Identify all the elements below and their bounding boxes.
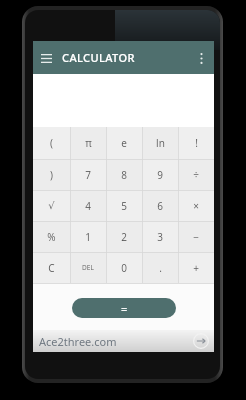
staticText: × xyxy=(193,199,199,213)
staticText: 5 xyxy=(121,199,127,213)
button[interactable]: ln xyxy=(142,127,178,159)
staticText: + xyxy=(193,261,199,275)
staticText: 7 xyxy=(85,168,91,182)
button[interactable]: 5 xyxy=(106,190,142,221)
button[interactable]: 3 xyxy=(142,221,178,252)
button[interactable]: 4 xyxy=(70,190,106,221)
staticText: √ xyxy=(48,200,55,212)
button[interactable]: C xyxy=(33,252,70,283)
button[interactable]: π xyxy=(70,127,106,159)
button[interactable]: ( xyxy=(33,127,70,159)
staticText: 0 xyxy=(121,261,127,275)
staticText: 4 xyxy=(85,199,91,213)
button[interactable]: DEL xyxy=(70,252,106,283)
button[interactable]: 2 xyxy=(106,221,142,252)
staticText: C xyxy=(48,261,55,275)
button[interactable]: % xyxy=(33,221,70,252)
button[interactable]: . xyxy=(142,252,178,283)
button[interactable]: 8 xyxy=(106,159,142,190)
button[interactable]: 6 xyxy=(142,190,178,221)
staticText: 2 xyxy=(121,230,127,244)
button[interactable]: More options xyxy=(191,48,211,68)
staticText: ln xyxy=(156,136,165,150)
staticText: − xyxy=(193,230,199,244)
button[interactable]: ! xyxy=(178,127,214,159)
staticText: % xyxy=(47,230,56,244)
button[interactable]: Open advertisement xyxy=(193,333,209,349)
staticText: = xyxy=(121,301,128,316)
button[interactable]: e xyxy=(106,127,142,159)
staticText: 6 xyxy=(157,199,163,213)
staticText: ) xyxy=(50,168,53,182)
button[interactable]: × xyxy=(178,190,214,221)
staticText: ( xyxy=(50,136,53,150)
button[interactable]: 9 xyxy=(142,159,178,190)
button[interactable]: ÷ xyxy=(178,159,214,190)
button[interactable]: Ace2three.com xyxy=(33,330,214,352)
button[interactable]: ) xyxy=(33,159,70,190)
staticText: π xyxy=(85,136,92,150)
staticText: ÷ xyxy=(193,168,199,182)
staticText: Ace2three.com xyxy=(39,334,117,349)
button[interactable]: = xyxy=(72,298,176,318)
staticText: DEL xyxy=(82,263,94,272)
staticText: 3 xyxy=(157,230,163,244)
staticText: 9 xyxy=(157,168,163,182)
button[interactable]: 1 xyxy=(70,221,106,252)
button[interactable]: √ xyxy=(33,190,70,221)
staticText: CALCULATOR xyxy=(62,50,135,65)
staticText: . xyxy=(159,261,162,275)
staticText: 8 xyxy=(121,168,127,182)
button[interactable]: 7 xyxy=(70,159,106,190)
staticText: ! xyxy=(195,136,198,150)
button[interactable]: + xyxy=(178,252,214,283)
button[interactable]: 0 xyxy=(106,252,142,283)
button[interactable]: − xyxy=(178,221,214,252)
staticText: 1 xyxy=(85,230,91,244)
staticText: e xyxy=(121,136,127,150)
button[interactable]: Open navigation menu xyxy=(36,48,56,68)
